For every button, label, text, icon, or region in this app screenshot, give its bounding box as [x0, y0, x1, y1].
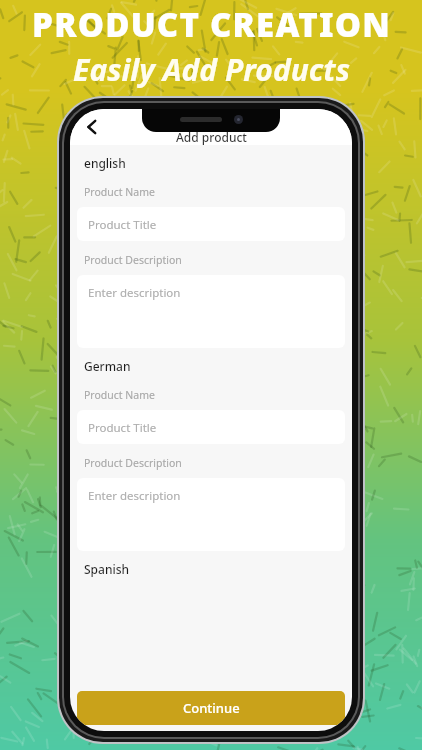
button[interactable]: Back: [74, 109, 110, 145]
button[interactable]: Continue: [77, 691, 345, 725]
staticText: english: [84, 155, 126, 171]
staticText: German: [84, 358, 131, 374]
staticText: Product Description: [84, 456, 182, 470]
staticText: Easily Add Products: [73, 49, 350, 90]
staticText: Product Name: [84, 185, 155, 199]
staticText: Add product: [176, 129, 247, 145]
button[interactable]: Product Title: [77, 207, 345, 241]
staticText: Product Title: [88, 217, 157, 233]
staticText: Enter description: [88, 488, 181, 504]
button[interactable]: Product Title: [77, 410, 345, 444]
staticText: Enter description: [88, 285, 181, 301]
button[interactable]: Enter description: [77, 478, 345, 551]
staticText: PRODUCT CREATION: [32, 2, 391, 47]
staticText: Product Title: [88, 420, 157, 436]
staticText: Spanish: [84, 561, 130, 577]
staticText: Continue: [183, 699, 240, 717]
staticText: Product Name: [84, 388, 155, 402]
staticText: Product Description: [84, 253, 182, 267]
button[interactable]: Enter description: [77, 275, 345, 348]
